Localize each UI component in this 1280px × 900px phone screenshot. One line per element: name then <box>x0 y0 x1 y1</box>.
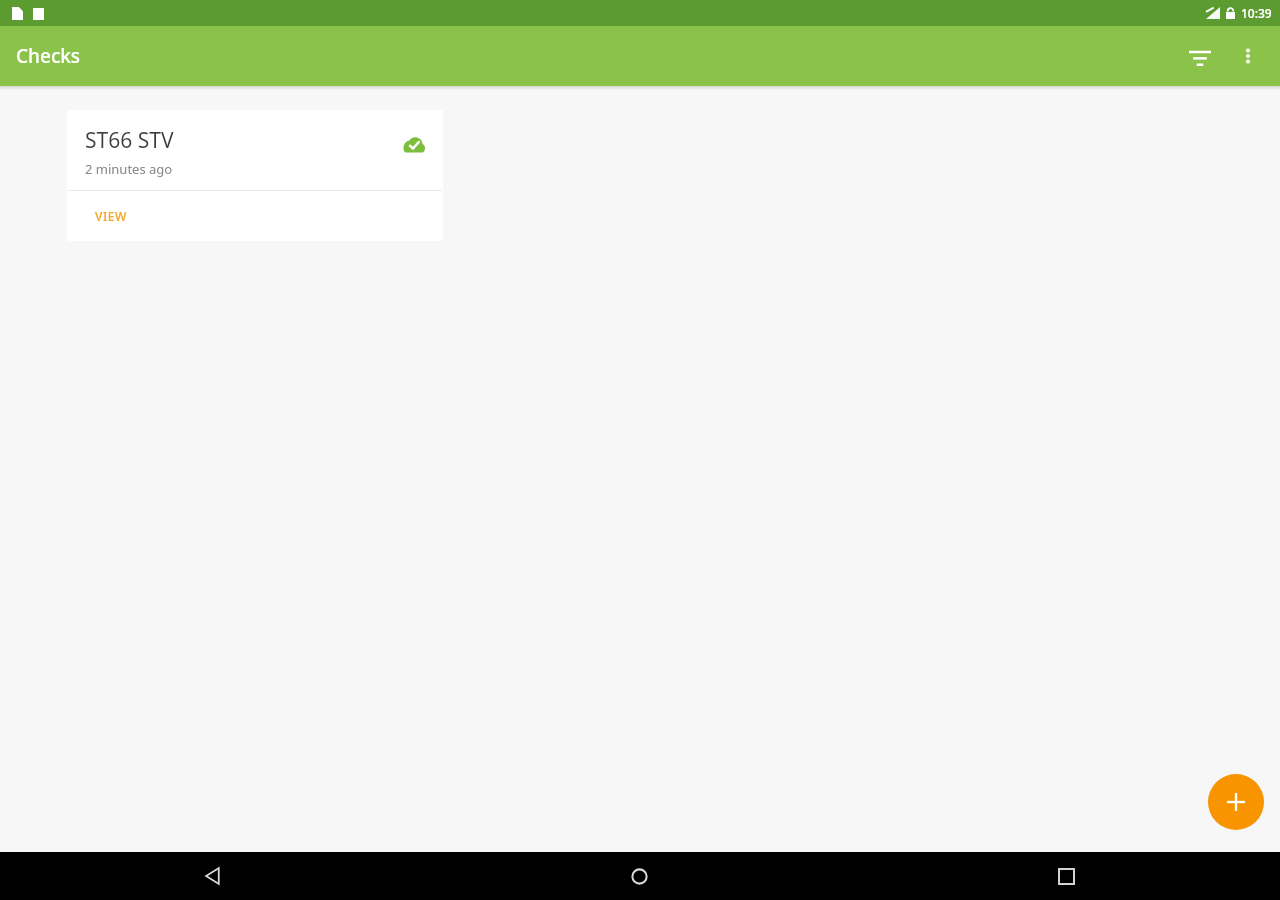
button[interactable]: Filter <box>1176 32 1224 80</box>
other: Synced <box>401 130 427 156</box>
button[interactable]: More options <box>1224 32 1272 80</box>
button[interactable]: Back <box>0 852 426 900</box>
button[interactable]: Home <box>426 852 853 900</box>
button[interactable]: VIEW <box>87 202 136 230</box>
button[interactable]: Add check <box>1208 774 1264 830</box>
button[interactable]: ST66 STV <box>67 110 443 241</box>
staticText: Checks <box>16 43 81 69</box>
staticText: ST66 STV <box>85 126 174 155</box>
staticText: 10:39 <box>1241 5 1272 21</box>
staticText: VIEW <box>95 208 128 224</box>
button[interactable]: Recent apps <box>853 852 1280 900</box>
staticText: 2 minutes ago <box>85 160 173 178</box>
